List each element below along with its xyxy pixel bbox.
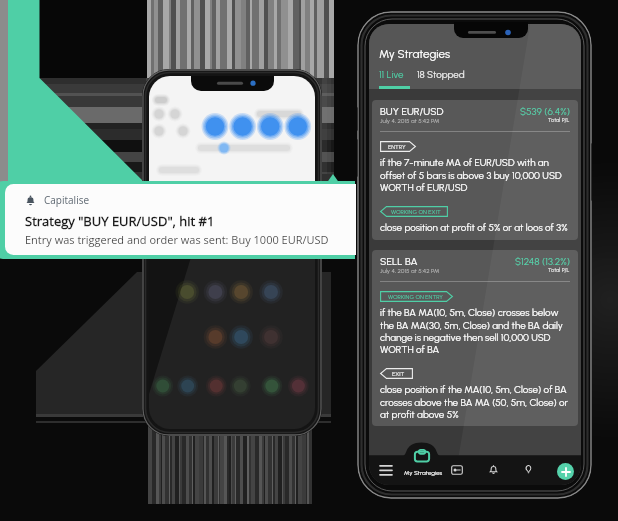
staticText: SELL BA (380, 255, 418, 267)
button[interactable]: Add strategy (557, 463, 574, 480)
button[interactable]: Ideas (519, 460, 537, 478)
staticText: if the 7-minute MA of EUR/USD with an of… (380, 157, 570, 193)
staticText: ENTRY (388, 143, 406, 150)
staticText: BUY EUR/USD (380, 105, 444, 117)
button[interactable]: 18 Stopped (417, 69, 465, 81)
staticText: My Strategies (379, 47, 450, 61)
button[interactable]: Notifications (484, 460, 502, 478)
button[interactable]: SELL BA (372, 250, 578, 426)
staticText: $539 (6.4%) (520, 105, 570, 117)
staticText: Strategy "BUY EUR/USD", hit #1 (25, 212, 215, 230)
staticText: Capitalise (44, 193, 90, 207)
button[interactable]: Menu (376, 460, 396, 480)
staticText: Entry was triggered and order was sent: … (25, 232, 329, 247)
staticText: July 4, 2015 at 5:42 PM (380, 117, 440, 124)
button[interactable]: Capitalise (5, 184, 356, 255)
staticText: Total P/L (548, 117, 570, 124)
staticText: 11 Live (379, 69, 404, 81)
staticText: $1248 (13.2%) (515, 255, 570, 267)
staticText: EXIT (392, 370, 405, 377)
staticText: WORKING ON ENTRY (388, 293, 443, 300)
button[interactable]: My Strategies (414, 449, 430, 462)
staticText: close position at profit of 5% or at loo… (380, 222, 568, 234)
button[interactable]: Orders (448, 461, 466, 479)
staticText: 18 Stopped (417, 69, 465, 81)
staticText: July 4, 2015 at 5:42 PM (380, 267, 440, 274)
button[interactable]: 11 Live (379, 69, 404, 81)
staticText: if the BA MA(10, 5m, Close) crosses belo… (380, 307, 570, 355)
staticText: WORKING ON EXIT (391, 208, 441, 215)
staticText: Total P/L (548, 267, 570, 274)
staticText: close position if the MA(10, 5m, Close) … (380, 384, 570, 420)
button[interactable]: BUY EUR/USD (372, 100, 578, 240)
button[interactable]: My Strategies (404, 469, 443, 477)
